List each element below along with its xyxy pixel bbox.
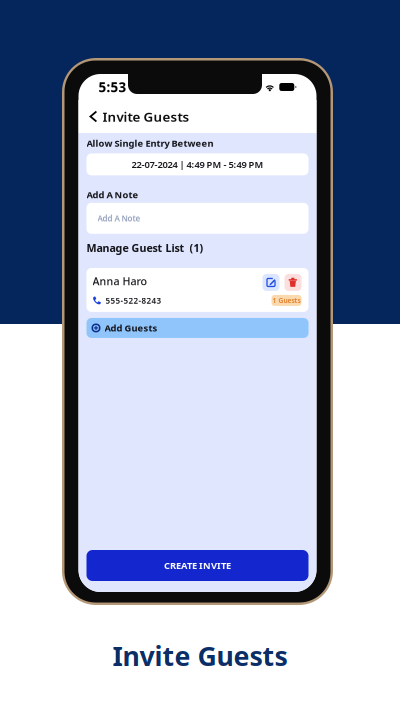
staticText: CREATE INVITE	[164, 559, 231, 572]
staticText: Allow Single Entry Between	[86, 137, 213, 149]
button[interactable]: Edit guest	[262, 274, 279, 291]
staticText: Invite Guests	[102, 108, 189, 125]
button[interactable]: Add Guests	[86, 318, 308, 338]
staticText: Invite Guests	[112, 638, 287, 673]
staticText: Add Guests	[104, 322, 157, 334]
staticText: Anna Haro	[92, 274, 147, 288]
staticText: 22-07-2024 | 4:49 PM - 5:49 PM	[131, 158, 263, 171]
staticText: Add A Note	[86, 188, 138, 201]
button[interactable]: CREATE INVITE	[86, 550, 308, 581]
staticText: Add A Note	[97, 213, 140, 224]
staticText: Manage Guest List	[86, 241, 184, 255]
button[interactable]: Delete guest	[284, 274, 301, 291]
button[interactable]: Back	[84, 103, 102, 129]
staticText: 555-522-8243	[105, 295, 161, 306]
staticText: 1 Guests	[272, 296, 300, 305]
staticText: 5:53	[98, 78, 126, 96]
staticText: (1)	[189, 241, 203, 255]
